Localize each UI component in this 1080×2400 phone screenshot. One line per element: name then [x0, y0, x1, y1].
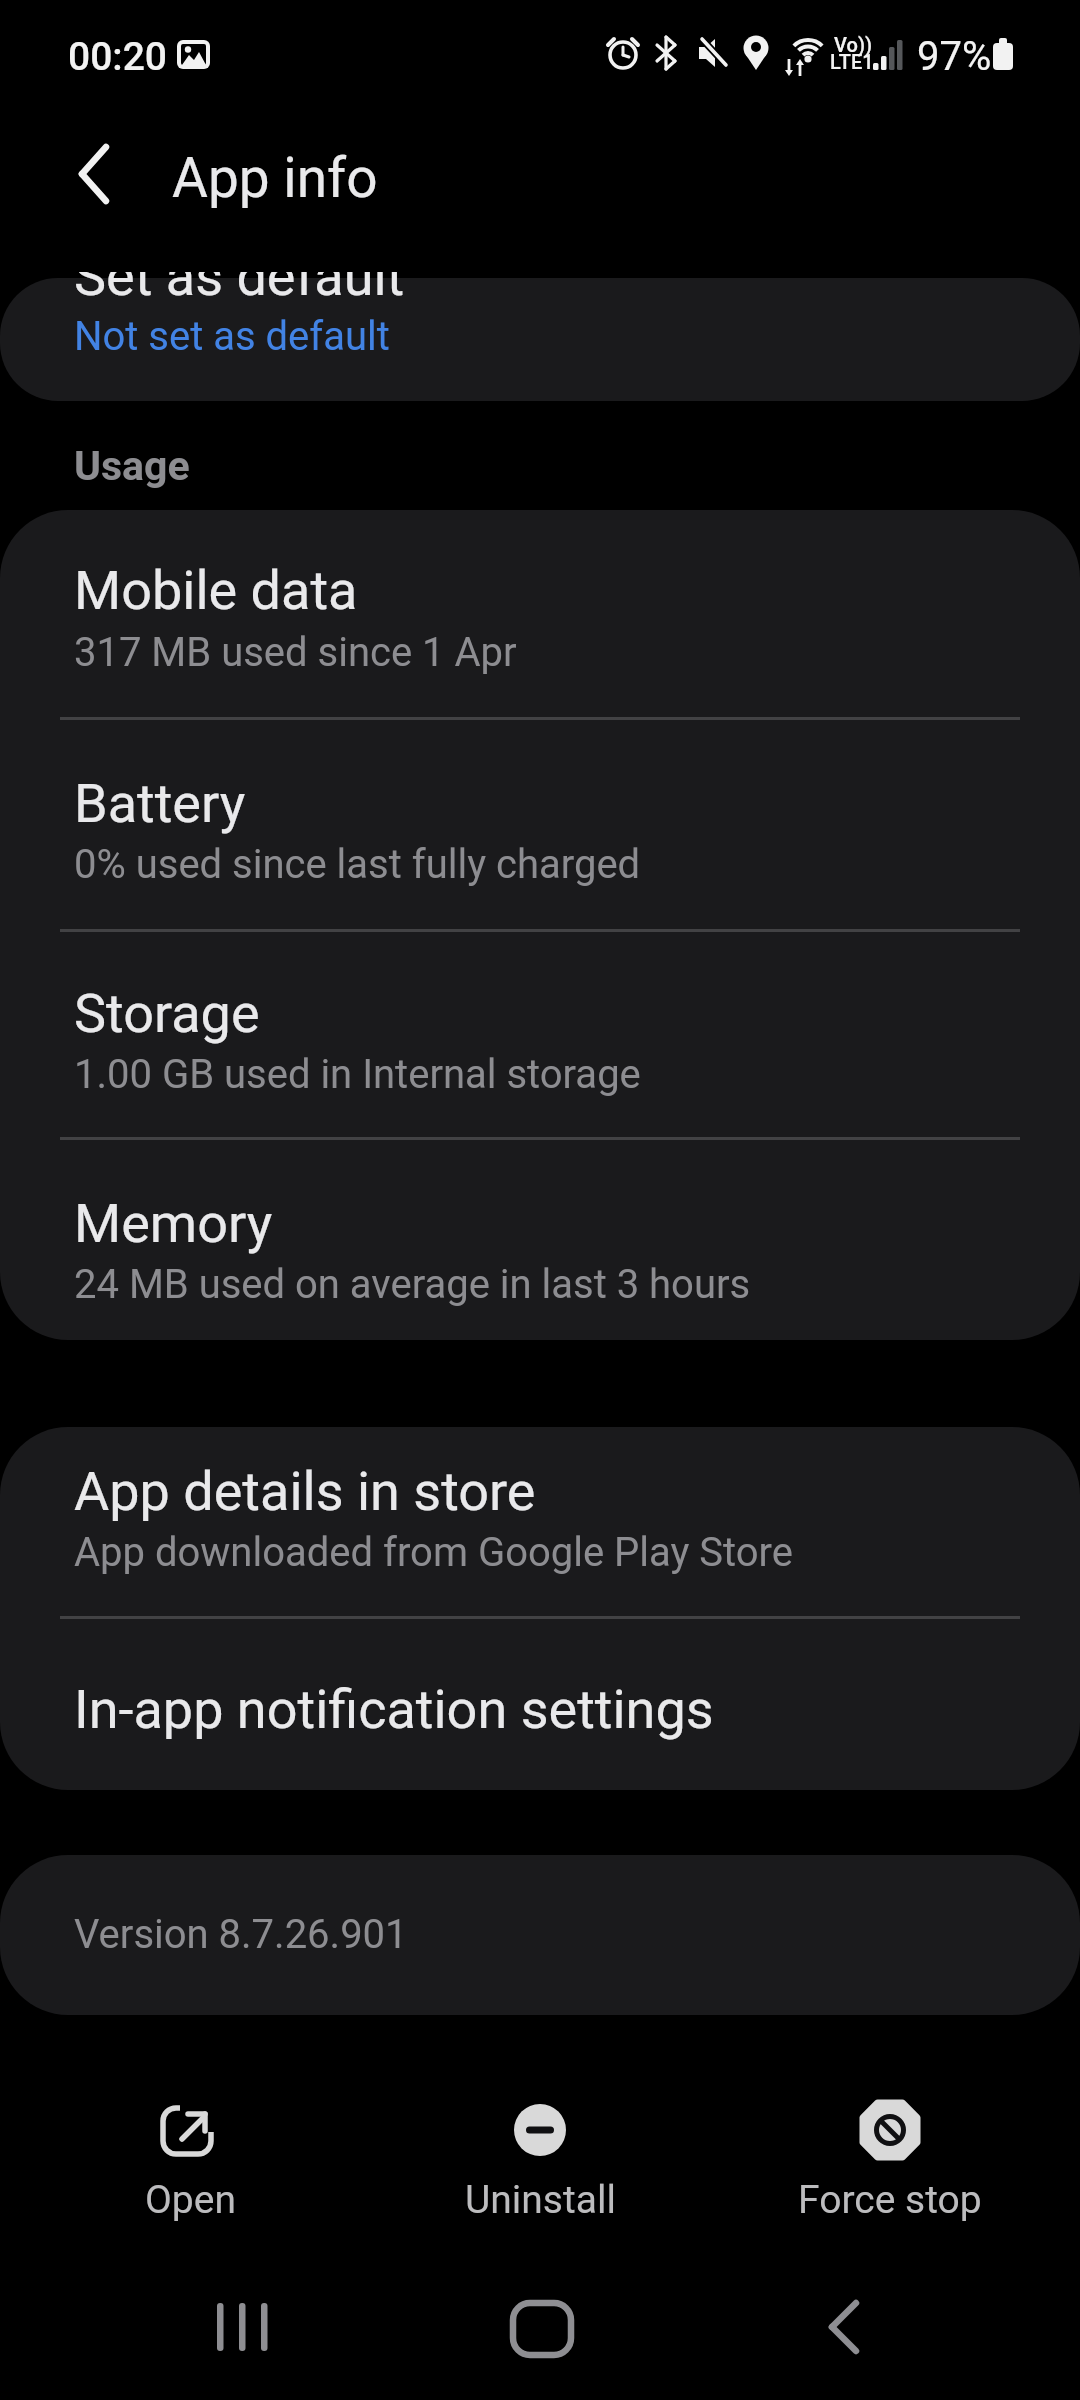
button[interactable]: Memory: [0, 1138, 1080, 1340]
button[interactable]: [150, 2265, 330, 2390]
button[interactable]: App details in store: [0, 1427, 1080, 1617]
button[interactable]: Mobile data: [0, 510, 1080, 718]
button[interactable]: Uninstall: [440, 2085, 640, 2235]
button[interactable]: Open: [90, 2085, 290, 2235]
staticText: App info: [172, 146, 378, 210]
staticText: Force stop: [798, 2177, 982, 2223]
staticText: Set as default: [74, 245, 405, 308]
staticText: Mobile data: [74, 559, 358, 622]
staticText: Vo)): [834, 33, 873, 56]
button[interactable]: In-app notification settings: [0, 1617, 1080, 1790]
staticText: LTE1: [830, 50, 874, 73]
staticText: Storage: [74, 982, 260, 1045]
staticText: Not set as default: [74, 313, 390, 360]
button[interactable]: Force stop: [790, 2085, 990, 2235]
staticText: 1.00 GB used in Internal storage: [74, 1051, 641, 1098]
staticText: App downloaded from Google Play Store: [74, 1529, 794, 1576]
staticText: 24 MB used on average in last 3 hours: [74, 1261, 751, 1308]
staticText: Usage: [74, 442, 190, 490]
staticText: 317 MB used since 1 Apr: [74, 629, 517, 676]
staticText: 0% used since last fully charged: [74, 841, 641, 888]
button[interactable]: Storage: [0, 930, 1080, 1138]
staticText: 00:20: [68, 34, 168, 80]
button[interactable]: [450, 2265, 630, 2390]
staticText: Memory: [74, 1192, 273, 1255]
staticText: In-app notification settings: [74, 1678, 714, 1741]
button[interactable]: [760, 2265, 940, 2390]
button[interactable]: [50, 135, 140, 225]
staticText: App details in store: [74, 1460, 536, 1523]
staticText: 97%: [917, 33, 992, 80]
staticText: Version 8.7.26.901: [74, 1911, 408, 1958]
button[interactable]: [0, 278, 1080, 401]
staticText: Battery: [74, 772, 246, 835]
button[interactable]: Battery: [0, 718, 1080, 930]
staticText: Open: [145, 2177, 236, 2223]
staticText: Uninstall: [465, 2177, 616, 2223]
